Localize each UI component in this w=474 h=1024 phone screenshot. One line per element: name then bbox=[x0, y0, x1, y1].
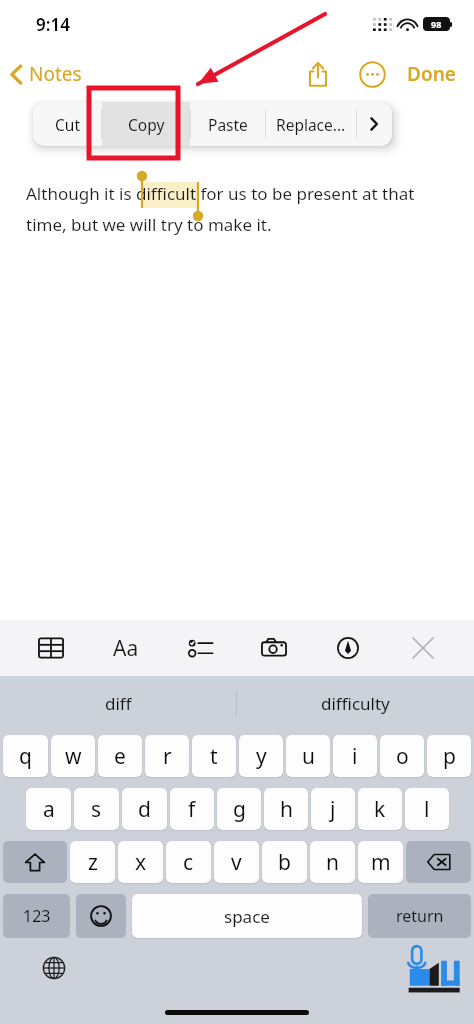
staticText: o bbox=[396, 742, 409, 771]
button[interactable]: Share bbox=[301, 57, 335, 91]
button[interactable]: Insert table bbox=[28, 625, 74, 671]
staticText: d bbox=[138, 795, 151, 824]
button[interactable]: i bbox=[333, 735, 377, 777]
staticText: time, but we will try to make it. bbox=[26, 213, 272, 236]
staticText: p bbox=[443, 742, 456, 771]
staticText: g bbox=[233, 795, 246, 824]
button[interactable]: m bbox=[358, 841, 403, 883]
button[interactable]: p bbox=[427, 735, 471, 777]
staticText: 123 bbox=[23, 905, 51, 927]
staticText: b bbox=[278, 848, 291, 877]
staticText: diff bbox=[105, 692, 132, 715]
staticText: Notes bbox=[29, 61, 82, 87]
button[interactable]: Change keyboard language bbox=[36, 950, 72, 986]
button[interactable]: diff bbox=[0, 676, 236, 730]
button[interactable]: v bbox=[214, 841, 259, 883]
button[interactable]: s bbox=[74, 788, 119, 830]
staticText: y bbox=[256, 742, 267, 771]
button[interactable]: space bbox=[132, 894, 362, 938]
button[interactable]: Camera bbox=[251, 625, 297, 671]
staticText: Aa bbox=[113, 634, 139, 663]
staticText: a bbox=[43, 795, 55, 824]
button[interactable]: Copy bbox=[102, 102, 190, 146]
staticText: Done bbox=[407, 61, 456, 87]
button[interactable]: Replace... bbox=[266, 102, 356, 146]
button[interactable]: o bbox=[380, 735, 424, 777]
staticText: h bbox=[280, 795, 293, 824]
staticText: Cut bbox=[55, 114, 80, 135]
button[interactable]: Backspace bbox=[406, 841, 471, 883]
button[interactable]: difficulty bbox=[237, 676, 474, 730]
button[interactable]: l bbox=[405, 788, 449, 830]
button[interactable]: b bbox=[262, 841, 307, 883]
button[interactable]: Format text bbox=[103, 625, 149, 671]
staticText: Although it is difficult for us to be pr… bbox=[26, 182, 415, 205]
button[interactable]: k bbox=[358, 788, 402, 830]
button[interactable]: q bbox=[3, 735, 48, 777]
staticText: i bbox=[352, 742, 358, 771]
button[interactable]: f bbox=[170, 788, 214, 830]
button[interactable]: r bbox=[145, 735, 189, 777]
staticText: Paste bbox=[208, 114, 248, 135]
staticText: 9:14 bbox=[36, 13, 70, 36]
button[interactable]: w bbox=[51, 735, 95, 777]
button[interactable]: x bbox=[118, 841, 163, 883]
button[interactable]: Paste bbox=[191, 102, 265, 146]
staticText: c bbox=[183, 848, 194, 877]
staticText: return bbox=[396, 905, 444, 927]
staticText: j bbox=[330, 795, 336, 824]
button[interactable]: a bbox=[26, 788, 71, 830]
staticText: l bbox=[424, 795, 430, 824]
staticText: k bbox=[374, 795, 386, 824]
button[interactable]: Close keyboard bbox=[400, 625, 446, 671]
staticText: e bbox=[114, 742, 126, 771]
button[interactable]: Emoji bbox=[76, 894, 126, 938]
button[interactable]: j bbox=[311, 788, 355, 830]
button[interactable]: More options bbox=[355, 57, 389, 91]
button[interactable]: 123 bbox=[3, 894, 70, 938]
button[interactable]: g bbox=[217, 788, 261, 830]
staticText: 98 bbox=[431, 18, 442, 30]
button[interactable]: Cut bbox=[33, 102, 101, 146]
staticText: x bbox=[135, 848, 147, 877]
staticText: q bbox=[19, 742, 32, 771]
button[interactable]: Done bbox=[403, 57, 460, 91]
staticText: difficulty bbox=[321, 692, 390, 715]
staticText: space bbox=[224, 905, 270, 928]
staticText: v bbox=[231, 848, 242, 877]
staticText: s bbox=[91, 795, 102, 824]
button[interactable]: Notes bbox=[10, 61, 82, 87]
staticText: t bbox=[210, 742, 218, 771]
button[interactable]: Markup bbox=[325, 625, 371, 671]
button[interactable]: h bbox=[264, 788, 308, 830]
button[interactable]: Checklist bbox=[177, 625, 223, 671]
button[interactable]: n bbox=[310, 841, 355, 883]
staticText: Copy bbox=[128, 114, 165, 135]
staticText: w bbox=[65, 742, 82, 771]
staticText: r bbox=[163, 742, 172, 771]
button[interactable]: return bbox=[368, 894, 471, 938]
button[interactable]: t bbox=[192, 735, 236, 777]
staticText: Replace... bbox=[276, 114, 346, 135]
staticText: m bbox=[371, 848, 391, 877]
button[interactable]: More bbox=[357, 102, 391, 146]
staticText: z bbox=[88, 848, 98, 877]
button[interactable]: d bbox=[122, 788, 167, 830]
button[interactable]: z bbox=[70, 841, 115, 883]
button[interactable]: Shift bbox=[3, 841, 67, 883]
button[interactable]: y bbox=[239, 735, 283, 777]
staticText: u bbox=[302, 742, 315, 771]
button[interactable]: e bbox=[98, 735, 142, 777]
staticText: n bbox=[326, 848, 339, 877]
staticText: f bbox=[188, 795, 196, 824]
button[interactable]: c bbox=[166, 841, 211, 883]
button[interactable]: u bbox=[286, 735, 330, 777]
